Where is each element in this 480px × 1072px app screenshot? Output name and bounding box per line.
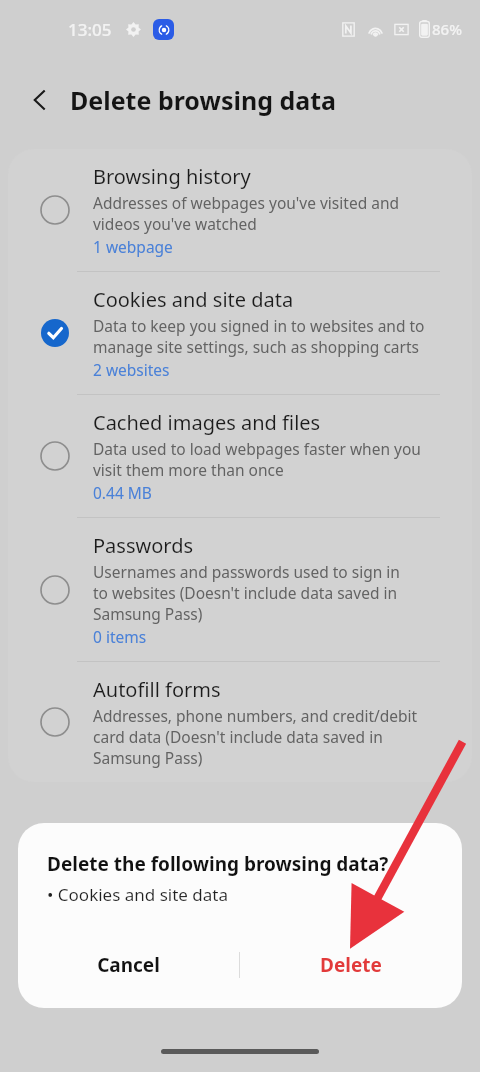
button[interactable]: Delete [240,934,462,996]
button[interactable]: Cancel [18,934,239,996]
staticText: manage site settings, such as shopping c… [93,336,419,357]
staticText: videos you've watched [93,213,257,234]
staticText: Addresses, phone numbers, and credit/deb… [93,705,418,726]
staticText: • Cookies and site data [47,883,228,906]
staticText: Cookies and site data [93,286,294,313]
staticText: Delete browsing data [70,83,337,117]
staticText: 0 items [93,626,147,647]
staticText: Samsung Pass) [93,747,203,768]
button[interactable]: Autofill forms [8,662,472,782]
button[interactable]: Cookies and site data [8,272,472,394]
staticText: Browsing history [93,163,251,190]
button[interactable]: Cached images and files [8,395,472,517]
staticText: 1 webpage [93,236,173,257]
button[interactable]: Back [18,78,62,122]
staticText: card data (Doesn't include data saved in [93,726,383,747]
button[interactable]: Browsing history [8,149,472,271]
staticText: 13:05 [68,18,112,41]
staticText: 0.44 MB [93,482,152,503]
button[interactable]: Passwords [8,518,472,661]
staticText: Passwords [93,532,194,559]
staticText: Samsung Pass) [93,603,203,624]
staticText: Addresses of webpages you've visited and [93,192,400,213]
staticText: 86% [432,19,462,39]
staticText: Cached images and files [93,409,321,436]
staticText: Cancel [97,952,160,978]
staticText: Delete [320,952,382,978]
staticText: Data to keep you signed in to websites a… [93,315,425,336]
staticText: Data used to load webpages faster when y… [93,438,421,459]
staticText: to websites (Doesn't include data saved … [93,582,398,603]
staticText: Autofill forms [93,676,221,703]
staticText: 2 websites [93,359,170,380]
staticText: visit them more than once [93,459,284,480]
staticText: Delete the following browsing data? [47,851,389,877]
staticText: Usernames and passwords used to sign in [93,561,400,582]
